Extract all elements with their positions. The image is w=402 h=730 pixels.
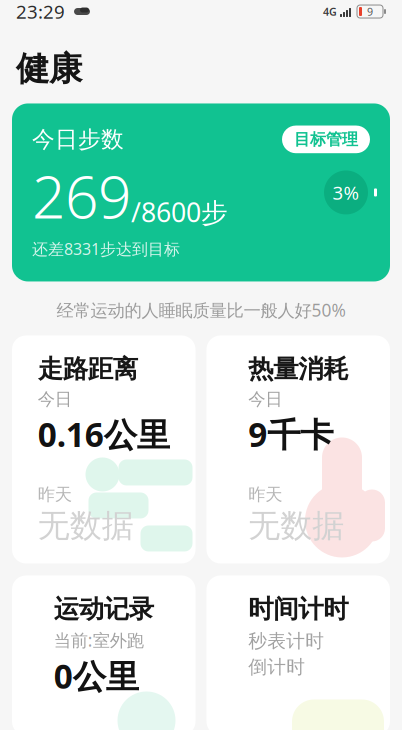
staticText: 昨天 bbox=[38, 484, 72, 505]
staticText: 今日 bbox=[38, 389, 72, 410]
staticText: 9 bbox=[367, 4, 373, 19]
button[interactable]: 运动记录 bbox=[12, 575, 195, 730]
staticText: 经常运动的人睡眠质量比一般人好50% bbox=[56, 298, 345, 321]
staticText: 热量消耗 bbox=[248, 353, 348, 385]
staticText: 3% bbox=[332, 180, 359, 205]
staticText: 倒计时 bbox=[248, 655, 305, 678]
staticText: 今日 bbox=[248, 389, 282, 410]
staticText: 无数据 bbox=[248, 506, 344, 545]
staticText: 还差8331步达到目标 bbox=[32, 238, 180, 259]
button[interactable]: 时间计时 bbox=[206, 575, 390, 730]
staticText: 23:29 bbox=[16, 0, 65, 24]
staticText: 0公里 bbox=[54, 654, 139, 698]
staticText: 昨天 bbox=[248, 484, 282, 505]
button[interactable]: 目标管理 bbox=[282, 126, 370, 153]
staticText: 健康 bbox=[16, 48, 82, 89]
staticText: 0.16公里 bbox=[38, 412, 170, 456]
staticText: 走路距离 bbox=[38, 353, 138, 385]
staticText: 4G bbox=[323, 4, 337, 19]
staticText: 9千卡 bbox=[248, 412, 333, 456]
staticText: 无数据 bbox=[38, 506, 134, 545]
staticText: /8600步 bbox=[131, 194, 228, 230]
staticText: 目标管理 bbox=[294, 130, 358, 149]
staticText: 今日步数 bbox=[32, 125, 124, 153]
staticText: 当前:室外跑 bbox=[54, 629, 144, 652]
button[interactable]: 走路距离 bbox=[12, 335, 195, 563]
staticText: 秒表计时 bbox=[248, 630, 324, 652]
staticText: 运动记录 bbox=[54, 593, 154, 625]
button[interactable]: 热量消耗 bbox=[206, 335, 390, 563]
staticText: 时间计时 bbox=[248, 593, 348, 625]
staticText: 269 bbox=[32, 157, 131, 235]
